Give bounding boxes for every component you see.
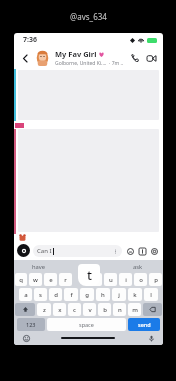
button[interactable]: h bbox=[96, 288, 110, 301]
staticText: a bbox=[24, 291, 28, 299]
button[interactable]: y bbox=[89, 273, 102, 286]
button[interactable]: Back bbox=[18, 51, 32, 65]
staticText: @avs_634 bbox=[70, 11, 107, 22]
button[interactable]: GIF bbox=[136, 245, 148, 257]
button[interactable]: Emoji bbox=[21, 333, 31, 343]
staticText: t bbox=[87, 266, 92, 284]
button[interactable]: Video call bbox=[143, 50, 159, 66]
button[interactable]: My Fav Girl bbox=[55, 49, 127, 67]
button[interactable]: v bbox=[83, 303, 96, 316]
button[interactable]: p bbox=[149, 273, 162, 286]
staticText: o bbox=[139, 276, 143, 284]
staticText: s bbox=[39, 291, 42, 299]
staticText: h bbox=[101, 291, 105, 299]
staticText: c bbox=[73, 306, 76, 314]
staticText: Can I bbox=[37, 247, 52, 255]
staticText: 123 bbox=[26, 321, 36, 328]
staticText: f bbox=[70, 291, 73, 299]
button[interactable]: Effects bbox=[148, 245, 160, 257]
staticText: q bbox=[19, 276, 23, 284]
button[interactable]: m bbox=[128, 303, 141, 316]
button[interactable]: Voice call bbox=[127, 50, 143, 66]
staticText: r bbox=[64, 276, 67, 284]
staticText: g bbox=[85, 291, 89, 299]
button[interactable]: e bbox=[44, 273, 57, 286]
staticText: z bbox=[43, 306, 46, 314]
staticText: u bbox=[109, 276, 113, 284]
button[interactable]: w bbox=[29, 273, 42, 286]
button[interactable]: g bbox=[80, 288, 94, 301]
button[interactable]: l bbox=[144, 288, 158, 301]
staticText: x bbox=[58, 306, 62, 314]
staticText: b bbox=[103, 306, 107, 314]
button[interactable]: f bbox=[64, 288, 78, 301]
staticText: My Fav Girl bbox=[55, 49, 97, 59]
staticText: w bbox=[33, 276, 38, 284]
button[interactable]: s bbox=[34, 288, 47, 301]
button[interactable]: Can I bbox=[33, 245, 122, 257]
button[interactable]: ask bbox=[113, 260, 163, 273]
staticText: p bbox=[154, 276, 158, 284]
staticText: send bbox=[138, 321, 151, 328]
button[interactable]: z bbox=[37, 303, 51, 316]
staticText: l bbox=[150, 291, 152, 299]
button[interactable]: Sticker bbox=[124, 245, 136, 257]
button[interactable]: o bbox=[134, 273, 147, 286]
button[interactable]: send bbox=[128, 318, 160, 331]
staticText: e bbox=[49, 276, 53, 284]
button[interactable]: i bbox=[119, 273, 132, 286]
button[interactable]: q bbox=[15, 273, 27, 286]
button[interactable]: n bbox=[113, 303, 126, 316]
button[interactable]: a bbox=[19, 288, 32, 301]
staticText: j bbox=[118, 291, 120, 299]
button[interactable]: Shift bbox=[15, 303, 35, 316]
button[interactable]: r bbox=[59, 273, 72, 286]
button[interactable]: b bbox=[98, 303, 111, 316]
button[interactable]: Camera bbox=[17, 244, 30, 257]
staticText: n bbox=[118, 306, 122, 314]
button[interactable]: c bbox=[68, 303, 81, 316]
button[interactable]: x bbox=[53, 303, 66, 316]
button[interactable]: u bbox=[104, 273, 117, 286]
staticText: d bbox=[54, 291, 58, 299]
staticText: v bbox=[88, 306, 92, 314]
staticText: 7:36 bbox=[23, 35, 37, 45]
button[interactable] bbox=[63, 260, 113, 273]
button[interactable]: Voice input bbox=[146, 333, 156, 343]
staticText: ask bbox=[133, 263, 143, 271]
button[interactable]: 123 bbox=[17, 318, 45, 331]
staticText: space bbox=[79, 321, 94, 328]
button[interactable]: have bbox=[14, 260, 63, 273]
button[interactable]: j bbox=[112, 288, 126, 301]
staticText: i bbox=[125, 276, 127, 284]
button[interactable]: k bbox=[128, 288, 142, 301]
staticText: have bbox=[32, 263, 46, 271]
button[interactable]: Backspace bbox=[143, 303, 162, 316]
staticText: k bbox=[133, 291, 137, 299]
staticText: m bbox=[132, 306, 138, 314]
button[interactable]: space bbox=[47, 318, 126, 331]
button[interactable]: d bbox=[49, 288, 62, 301]
staticText: Golborne, United Ki.... · 7m .. bbox=[55, 60, 124, 67]
